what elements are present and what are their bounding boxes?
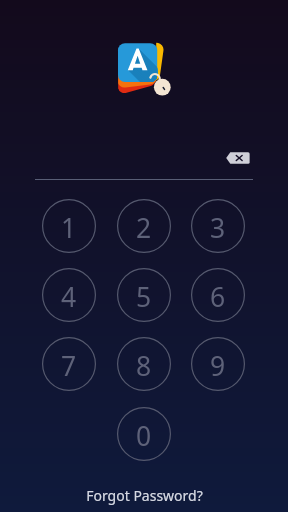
staticText: 6	[210, 279, 226, 315]
staticText: 2	[136, 210, 152, 246]
staticText: Forgot Password?	[86, 486, 203, 505]
button[interactable]: 7	[42, 337, 96, 391]
button[interactable]: 6	[191, 268, 245, 322]
staticText: 8	[136, 348, 152, 384]
button[interactable]: 9	[191, 337, 245, 391]
button[interactable]: Forgot Password?	[64, 483, 224, 507]
staticText: 7	[61, 348, 77, 384]
button[interactable]: 2	[117, 199, 171, 253]
staticText: 5	[136, 279, 152, 315]
button[interactable]: 0	[117, 407, 171, 461]
staticText: 3	[210, 210, 226, 246]
button[interactable]: Backspace	[218, 144, 258, 172]
button[interactable]: 4	[42, 268, 96, 322]
staticText: 1	[61, 210, 77, 246]
staticText: 9	[210, 348, 226, 384]
button[interactable]: 3	[191, 199, 245, 253]
button[interactable]: 8	[117, 337, 171, 391]
button[interactable]: 5	[117, 268, 171, 322]
staticText: 4	[61, 279, 77, 315]
button[interactable]: 1	[42, 199, 96, 253]
staticText: 0	[136, 418, 152, 454]
